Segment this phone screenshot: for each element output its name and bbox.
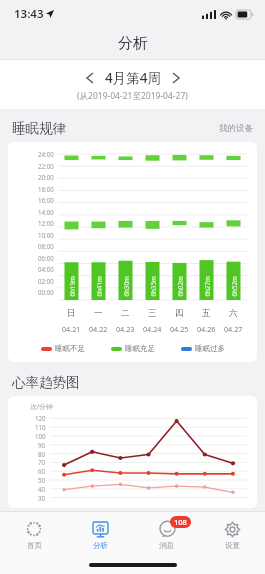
staticText: 睡眠充足 [125,344,155,353]
button[interactable]: 消息 [133,512,199,556]
button[interactable]: 设置 [199,512,265,556]
staticText: (从2019-04-21至2019-04-27) [77,90,188,102]
staticText: 6h35m [148,275,156,296]
staticText: 10:00 [38,231,54,239]
staticText: 12:00 [38,219,54,227]
staticText: 50 [38,476,46,484]
button[interactable]: 下一周 [166,68,186,88]
staticText: 04.21 [62,324,81,334]
staticText: 我的设备 [219,123,253,134]
staticText: 6h19m [67,275,75,296]
staticText: 02:00 [38,277,54,285]
staticText: 睡眠过多 [195,344,225,353]
other: 设置 [224,521,241,538]
staticText: 04.27 [224,324,243,334]
staticText: 40 [38,485,46,493]
staticText: 30 [38,494,46,502]
staticText: 110 [35,423,46,431]
staticText: 24:00 [38,150,54,158]
staticText: 04.26 [197,324,216,334]
staticText: 消息 [159,541,174,550]
staticText: 14:00 [38,208,54,216]
staticText: 次/分钟 [30,402,53,411]
staticText: 06:00 [38,254,54,262]
staticText: 6h41m [94,275,102,296]
staticText: 100 [35,432,46,440]
staticText: 80 [38,450,46,458]
staticText: 00:00 [38,288,54,296]
button[interactable]: 首页 [0,512,67,556]
staticText: 睡眠不足 [55,344,85,353]
other: 消息 [159,521,176,538]
staticText: 五 [202,308,211,319]
other: 分析 [92,521,109,538]
staticText: 心率趋势图 [12,374,80,391]
staticText: 6h02m [175,275,183,296]
other: 首页 [26,521,42,537]
staticText: 睡眠规律 [12,120,66,137]
staticText: 日 [67,308,76,319]
staticText: 三 [148,308,157,319]
staticText: 6h30m [121,275,129,296]
staticText: 6h52m [229,275,237,296]
staticText: 设置 [225,541,240,550]
staticText: 04.23 [116,324,135,334]
staticText: 六 [229,308,238,319]
staticText: 04.24 [143,324,162,334]
staticText: 16:00 [38,196,54,204]
staticText: 70 [38,458,46,466]
staticText: 13:43 [14,6,44,22]
staticText: 4月第4周 [105,69,161,87]
staticText: 90 [38,441,46,449]
staticText: 一 [94,308,103,319]
staticText: 120 [35,414,46,422]
button[interactable]: 上一周 [80,68,100,88]
staticText: 四 [175,308,184,319]
staticText: 04.22 [89,324,108,334]
staticText: 20:00 [38,173,54,181]
staticText: 08:00 [38,242,54,250]
staticText: 二 [121,308,130,319]
staticText: 首页 [27,541,42,550]
staticText: 60 [38,467,46,475]
staticText: 22:00 [38,162,54,170]
staticText: 6h27m [202,275,210,296]
staticText: 04.25 [170,324,189,334]
button[interactable]: 我的设备 [219,123,253,134]
staticText: 04:00 [38,265,54,273]
button[interactable]: 分析 [67,512,133,556]
staticText: 分析 [118,34,148,53]
staticText: 18:00 [38,185,54,193]
staticText: 108 [174,517,187,527]
staticText: 分析 [93,541,108,550]
